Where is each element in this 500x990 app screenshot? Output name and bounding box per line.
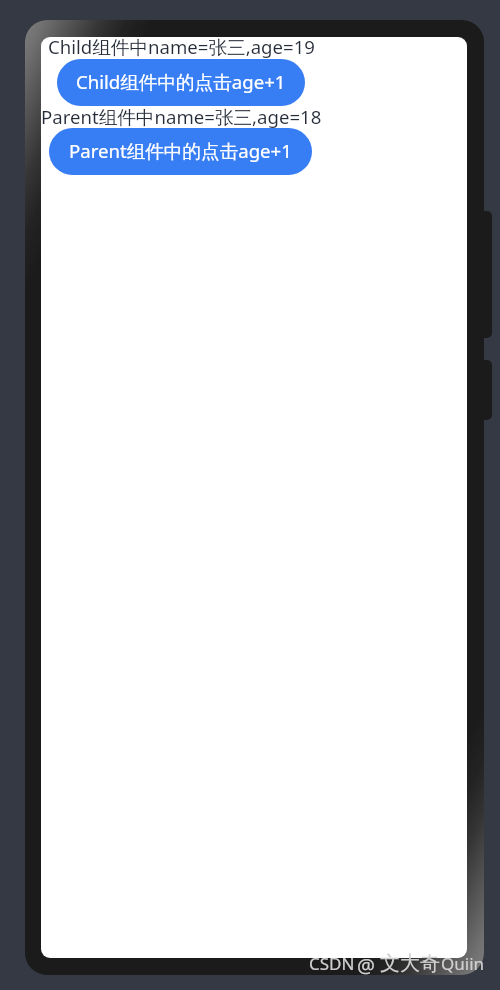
button[interactable]: Child组件中的点击age+1 (57, 59, 305, 106)
staticText: Parent组件中的点击age+1 (69, 138, 292, 163)
other: Power (478, 360, 492, 420)
staticText: 文大奇 (380, 951, 440, 976)
staticText: Quiin (441, 952, 485, 975)
staticText: Child组件中name=张三,age=19 (48, 37, 315, 59)
button[interactable]: Parent组件中的点击age+1 (49, 128, 312, 175)
staticText: CSDN (309, 952, 355, 975)
staticText: @ (357, 952, 375, 979)
staticText: Child组件中的点击age+1 (76, 69, 286, 94)
staticText: Parent组件中name=张三,age=18 (41, 104, 322, 129)
